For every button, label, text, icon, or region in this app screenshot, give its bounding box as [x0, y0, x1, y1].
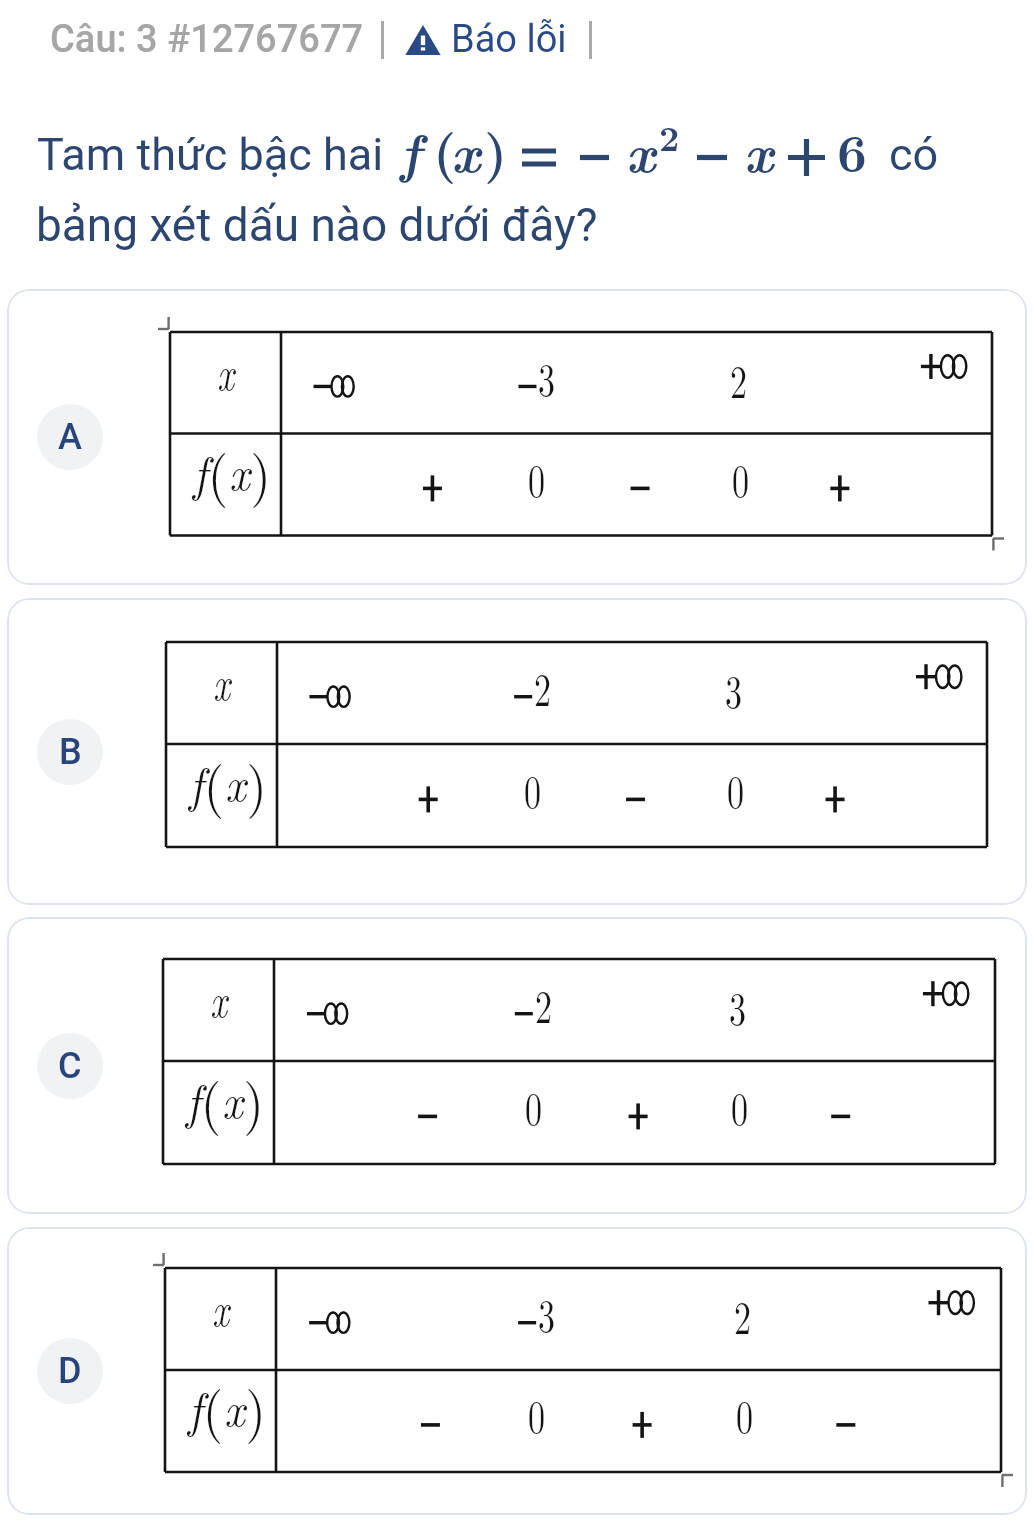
staticText: x — [217, 338, 235, 403]
staticText: f — [193, 437, 208, 505]
staticText: D — [58, 1350, 82, 1392]
staticText: A — [58, 416, 82, 458]
button[interactable]: A — [7, 289, 1027, 585]
staticText: f — [400, 112, 421, 188]
staticText: 2 — [535, 971, 552, 1036]
staticText: ( — [204, 743, 225, 821]
staticText: x — [213, 648, 231, 713]
button[interactable]: Báo lỗi — [405, 17, 567, 62]
staticText: ( — [433, 112, 457, 186]
staticText: f — [189, 748, 204, 816]
staticText: x — [210, 965, 228, 1030]
staticText: 0 — [736, 1381, 753, 1446]
button[interactable]: D — [7, 1227, 1027, 1515]
staticText: bảng xét dấu nào dưới đây? — [36, 198, 598, 252]
staticText: x — [222, 1066, 243, 1131]
staticText: 0 — [732, 445, 749, 510]
staticText: 3 — [729, 973, 746, 1038]
staticText: 0 — [528, 445, 545, 510]
staticText: 0 — [524, 756, 541, 821]
staticText: 0 — [731, 1073, 748, 1138]
staticText: x — [744, 112, 774, 188]
staticText: ) — [243, 1060, 264, 1138]
staticText: ) — [250, 432, 271, 510]
staticText: Báo lỗi — [451, 17, 567, 62]
staticText: 0 — [528, 1381, 545, 1446]
staticText: 6 — [837, 112, 867, 186]
staticText: ( — [201, 1060, 222, 1138]
staticText: 2 — [734, 1282, 751, 1347]
staticText: 0 — [727, 756, 744, 821]
staticText: ) — [246, 743, 267, 821]
staticText: x — [626, 112, 656, 188]
staticText: x — [212, 1274, 230, 1339]
staticText: 2 — [659, 111, 680, 161]
staticText: x — [224, 1374, 245, 1439]
staticText: ) — [484, 112, 508, 186]
staticText: ( — [203, 1368, 224, 1446]
staticText: 2 — [534, 654, 551, 719]
staticText: B — [59, 731, 82, 773]
staticText: Tam thức bậc hai — [37, 128, 384, 181]
staticText: x — [229, 438, 250, 503]
staticText: C — [58, 1045, 82, 1087]
staticText: 3 — [538, 344, 555, 409]
other: Báo lỗi — [405, 24, 441, 56]
staticText: x — [225, 749, 246, 814]
staticText: x — [451, 112, 481, 188]
staticText: 2 — [730, 346, 747, 411]
staticText: có — [889, 128, 939, 181]
button[interactable]: B — [7, 598, 1027, 905]
button[interactable]: C — [7, 917, 1027, 1214]
staticText: f — [186, 1065, 201, 1133]
staticText: ) — [245, 1368, 266, 1446]
staticText: 0 — [525, 1073, 542, 1138]
staticText: 3 — [725, 656, 742, 721]
staticText: ( — [208, 432, 229, 510]
staticText: 3 — [538, 1280, 555, 1345]
staticText: Câu: 3 #12767677 — [50, 17, 364, 62]
staticText: f — [188, 1373, 203, 1441]
